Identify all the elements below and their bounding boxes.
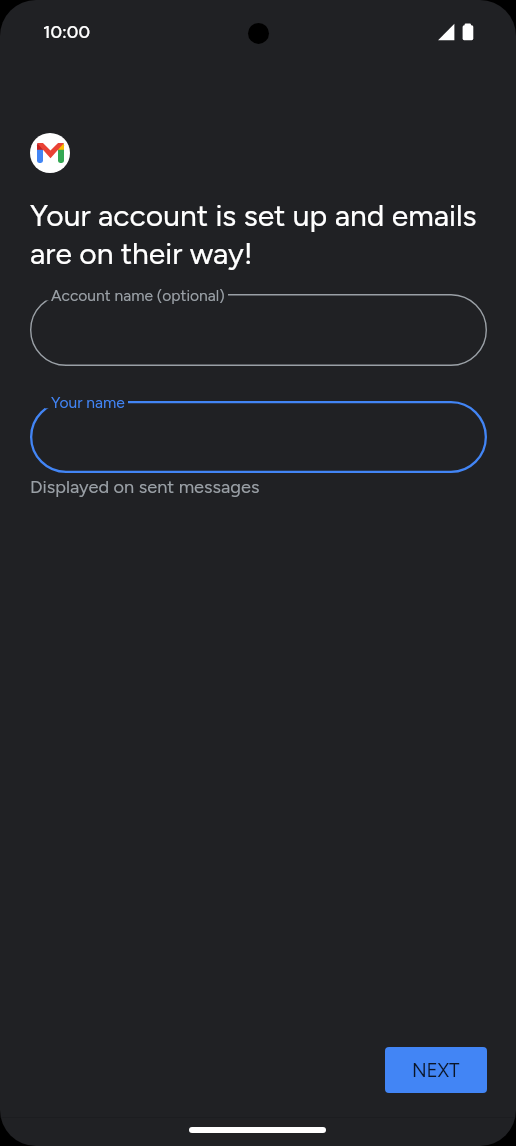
staticText: Displayed on sent messages [30, 476, 260, 498]
staticText: 10:00 [43, 21, 90, 43]
button[interactable]: Your name [30, 401, 487, 473]
button[interactable]: Account name (optional) [30, 294, 487, 366]
other: Gmail [30, 133, 70, 173]
staticText: Your account is set up and emails are on… [30, 197, 486, 272]
staticText: Your name [51, 393, 125, 412]
staticText: NEXT [412, 1059, 460, 1082]
staticText: Account name (optional) [51, 286, 225, 305]
button[interactable]: NEXT [385, 1047, 487, 1093]
